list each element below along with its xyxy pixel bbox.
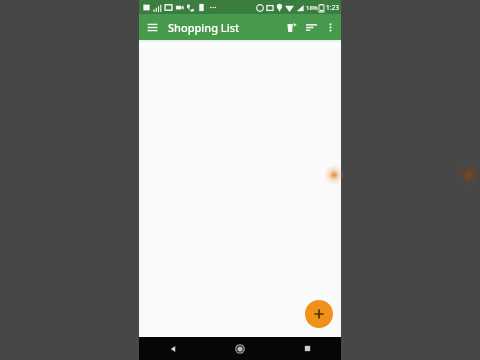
button[interactable]: Add item — [305, 300, 333, 328]
button[interactable]: Back — [158, 337, 188, 360]
staticText: 18% — [306, 4, 318, 12]
button[interactable]: Recent apps — [292, 337, 322, 360]
button[interactable]: Open navigation drawer — [143, 18, 161, 36]
button[interactable]: More options — [321, 18, 339, 36]
staticText: 1:23 — [326, 3, 339, 12]
button[interactable]: Home — [225, 337, 255, 360]
staticText: Shopping List — [168, 20, 240, 35]
button[interactable]: Delete — [281, 17, 301, 37]
button[interactable]: Sort — [301, 17, 321, 37]
